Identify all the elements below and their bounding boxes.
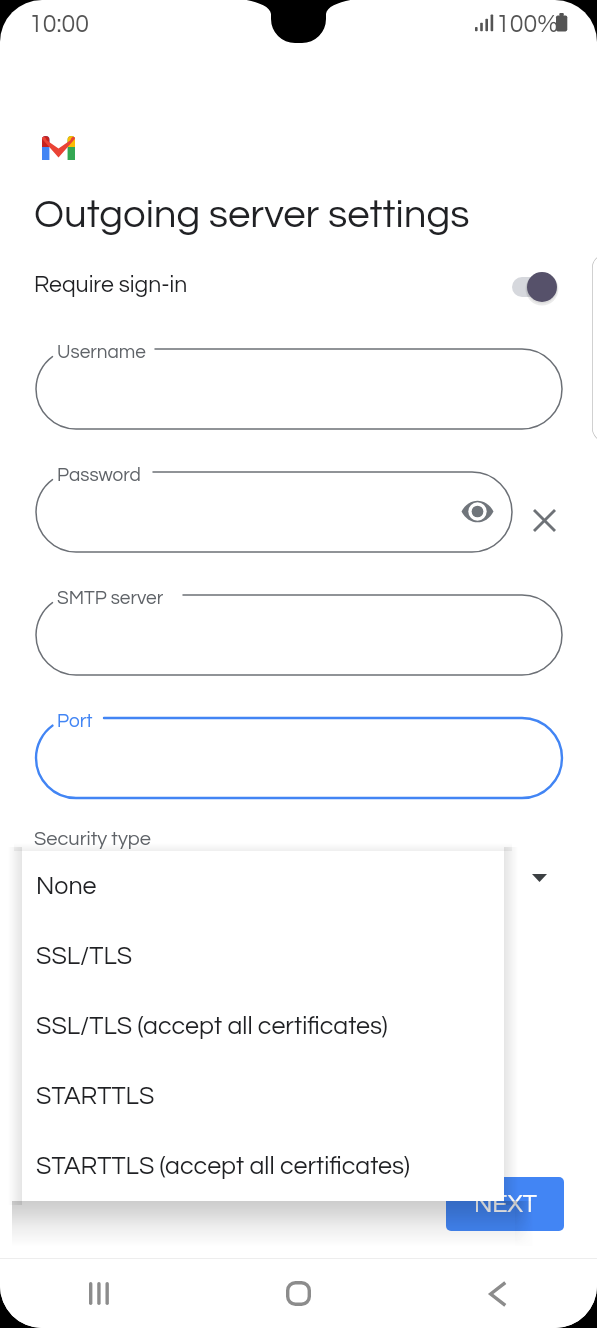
staticText: STARTTLS	[36, 1083, 155, 1109]
button[interactable]: None	[22, 851, 504, 921]
button[interactable]: Back	[398, 1259, 597, 1328]
button[interactable]: Require sign-in	[0, 263, 597, 311]
button[interactable]: Port	[36, 718, 562, 798]
staticText: Outgoing server settings	[34, 194, 470, 235]
button[interactable]: SSL/TLS (accept all certificates)	[22, 991, 504, 1061]
button[interactable]: Recents	[0, 1259, 199, 1328]
staticText: Username	[57, 342, 146, 362]
button[interactable]: Password	[36, 472, 512, 552]
button[interactable]: Home	[199, 1259, 398, 1328]
button[interactable]: SMTP server	[36, 595, 562, 675]
other: Gmail	[42, 136, 75, 160]
staticText: 10:00	[29, 11, 90, 37]
button[interactable]: Require sign-in	[505, 264, 561, 310]
button[interactable]: Username	[36, 349, 562, 429]
button[interactable]: NEXT	[446, 1177, 564, 1231]
staticText: Security type	[34, 829, 151, 850]
staticText: SMTP server	[57, 588, 164, 608]
button[interactable]: STARTTLS	[22, 1061, 504, 1131]
staticText: SSL/TLS	[36, 943, 133, 969]
staticText: None	[36, 873, 97, 899]
button[interactable]: STARTTLS (accept all certificates)	[22, 1131, 504, 1201]
staticText: STARTTLS (accept all certificates)	[36, 1153, 410, 1179]
staticText: NEXT	[474, 1191, 537, 1217]
staticText: SSL/TLS (accept all certificates)	[36, 1013, 388, 1039]
staticText: Require sign-in	[34, 273, 188, 297]
staticText: Port	[57, 711, 93, 731]
staticText: 100%	[496, 11, 559, 37]
button[interactable]: Clear password	[522, 498, 566, 542]
button[interactable]: Open security type menu	[515, 854, 563, 902]
button[interactable]: SSL/TLS	[22, 921, 504, 991]
button[interactable]: Show password	[455, 489, 499, 533]
staticText: Password	[57, 465, 141, 485]
